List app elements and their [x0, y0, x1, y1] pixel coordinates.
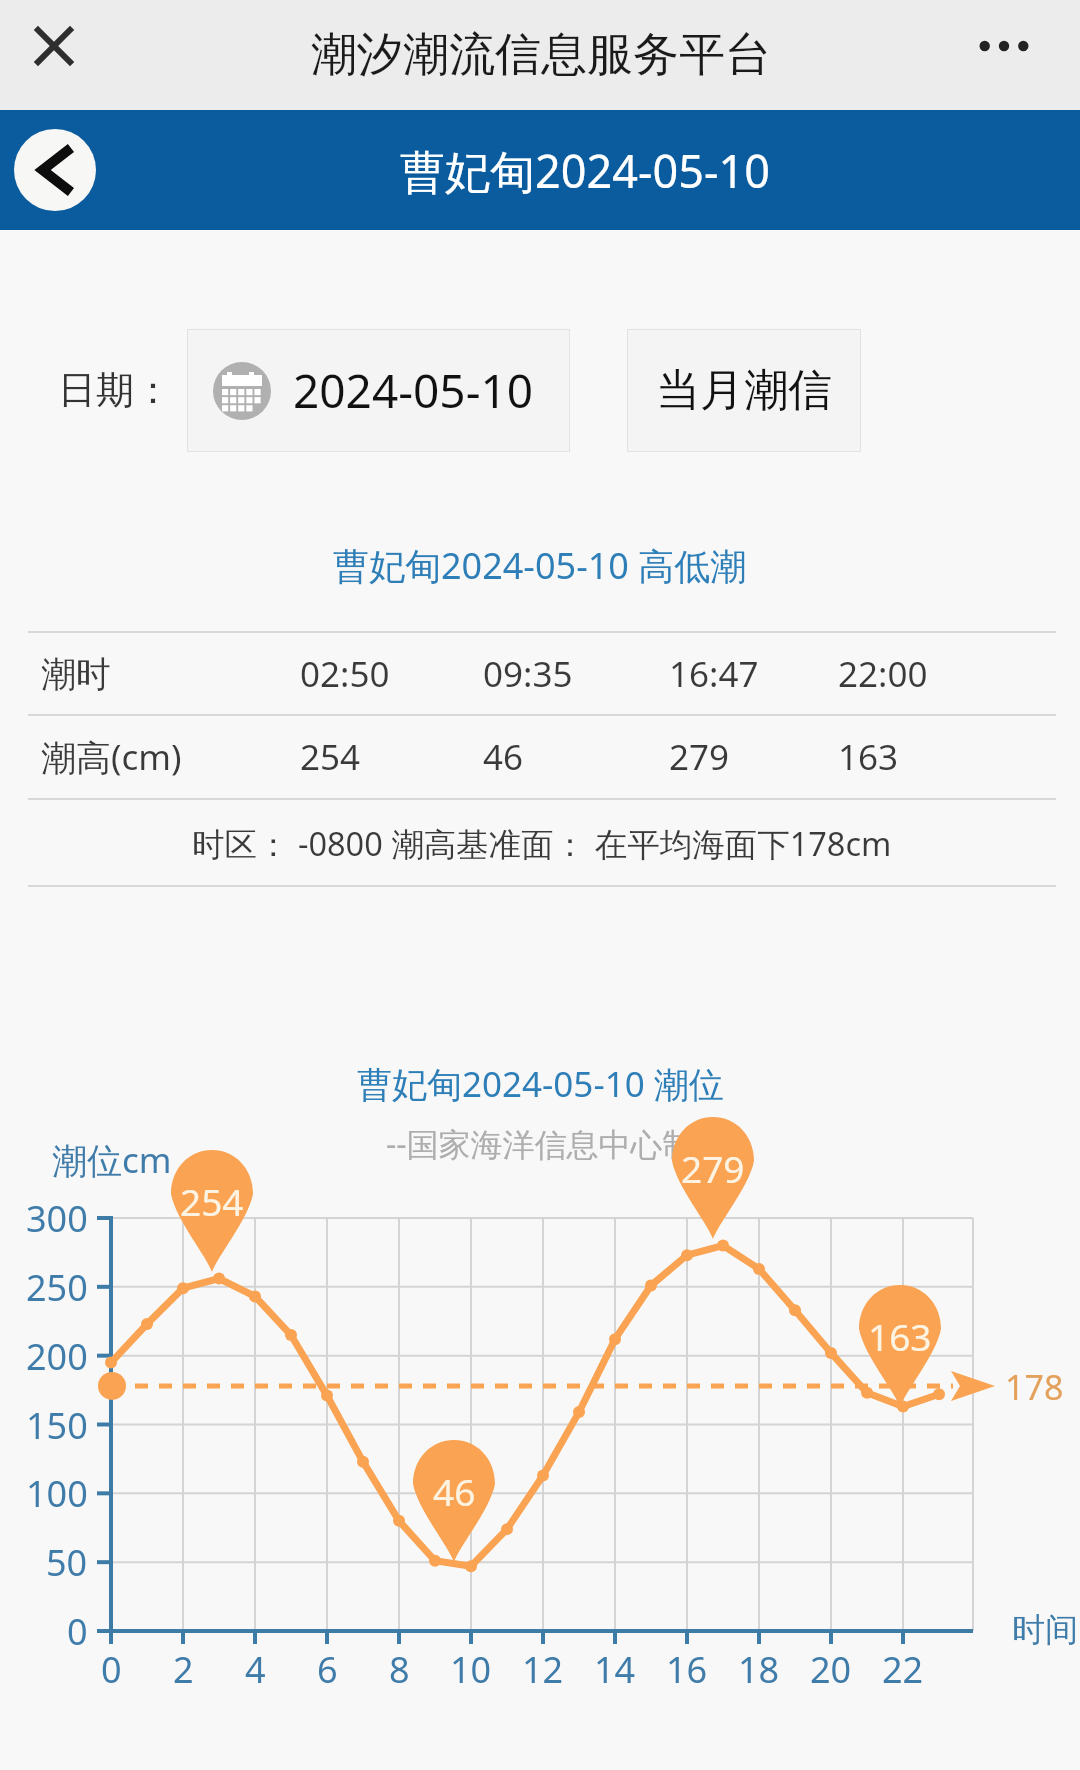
staticText: 曹妃甸2024-05-10 潮位 [357, 1060, 724, 1108]
staticText: 46 [433, 1466, 476, 1516]
staticText: 02:50 [300, 650, 390, 698]
staticText: 4 [245, 1645, 266, 1694]
button[interactable]: 当月潮信 [627, 329, 861, 452]
staticText: 18 [738, 1645, 780, 1694]
staticText: 16 [666, 1645, 708, 1694]
staticText: 163 [838, 733, 899, 781]
staticText: 250 [26, 1263, 88, 1312]
staticText: 日期： [58, 366, 172, 414]
staticText: 178 [1005, 1364, 1064, 1410]
staticText: 0 [101, 1645, 122, 1694]
staticText: 2024-05-10 [293, 359, 534, 422]
staticText: 潮时 [41, 652, 111, 696]
staticText: 曹妃甸2024-05-10 高低潮 [333, 541, 747, 590]
staticText: 潮汐潮流信息服务平台 [311, 26, 771, 84]
staticText: 100 [26, 1469, 88, 1518]
staticText: 14 [594, 1645, 636, 1694]
staticText: --国家海洋信息中心制 [386, 1122, 695, 1166]
staticText: 时区： -0800 潮高基准面： 在平均海面下178cm [192, 821, 892, 865]
staticText: 22:00 [838, 650, 928, 698]
staticText: 0 [67, 1607, 88, 1656]
staticText: 20 [810, 1645, 852, 1694]
staticText: 当月潮信 [656, 363, 832, 418]
staticText: 300 [26, 1194, 88, 1243]
staticText: 时间 [1012, 1609, 1078, 1651]
button[interactable]: More options [964, 6, 1044, 86]
staticText: 163 [868, 1311, 932, 1361]
button[interactable]: 2024-05-10 [187, 329, 570, 452]
staticText: 22 [882, 1645, 924, 1694]
staticText: 曹妃甸2024-05-10 [400, 140, 770, 201]
staticText: 279 [681, 1143, 745, 1193]
staticText: 潮位cm [52, 1136, 172, 1184]
staticText: 150 [26, 1401, 88, 1450]
staticText: 09:35 [483, 650, 573, 698]
staticText: 10 [450, 1645, 492, 1694]
staticText: 46 [483, 733, 524, 781]
staticText: 6 [317, 1645, 338, 1694]
staticText: 254 [180, 1176, 244, 1226]
button[interactable]: Back [14, 129, 96, 211]
staticText: 254 [300, 733, 361, 781]
staticText: 12 [522, 1645, 564, 1694]
staticText: 200 [26, 1332, 88, 1381]
staticText: 8 [389, 1645, 410, 1694]
staticText: 16:47 [669, 650, 759, 698]
staticText: 潮高(cm) [41, 733, 182, 781]
staticText: 2 [173, 1645, 194, 1694]
staticText: 50 [46, 1538, 88, 1587]
button[interactable]: Close [14, 6, 94, 86]
staticText: 279 [669, 733, 730, 781]
